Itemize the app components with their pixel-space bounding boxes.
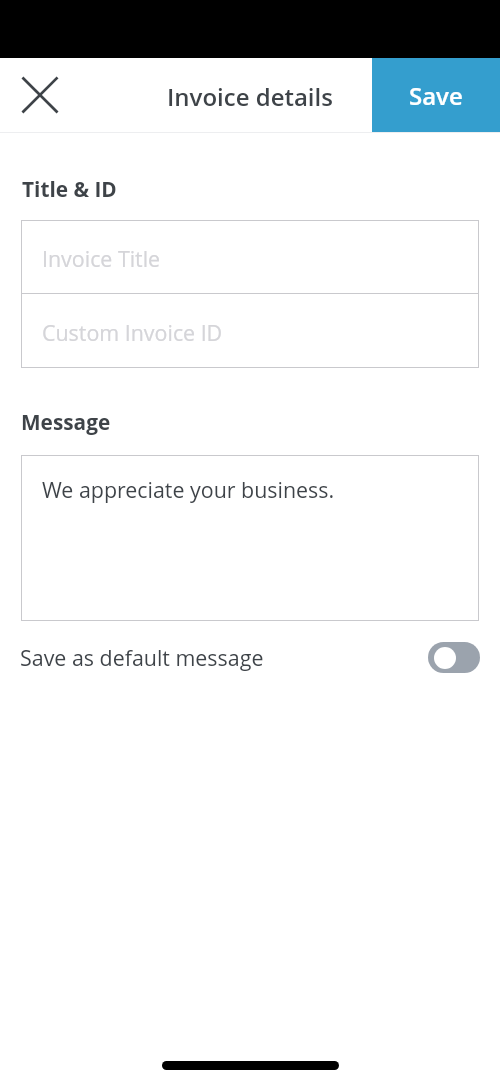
button[interactable]: Close [0,58,79,132]
button[interactable]: Save [372,58,500,132]
button[interactable]: Custom Invoice ID [21,294,479,368]
staticText: Invoice details [167,80,333,113]
staticText: Save [409,79,463,112]
button[interactable]: Save as default message, off [428,642,480,673]
staticText: Save as default message [20,643,264,672]
staticText: Invoice Title [42,244,161,273]
staticText: Message [21,408,111,436]
button[interactable]: Invoice Title [21,220,479,293]
button[interactable]: Save as default message [20,628,480,686]
button[interactable]: We appreciate your business. [21,455,479,621]
staticText: Title & ID [22,175,117,203]
staticText: Custom Invoice ID [42,318,223,347]
staticText: We appreciate your business. [42,475,335,504]
